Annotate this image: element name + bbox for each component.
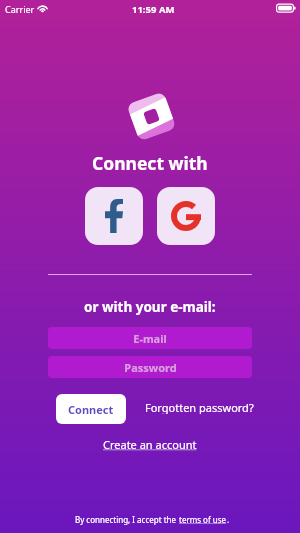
staticText: terms of use [179, 514, 227, 525]
staticText: E-mail [133, 331, 167, 346]
staticText: or with your e-mail: [84, 298, 216, 316]
staticText: . [227, 514, 230, 525]
staticText: By connecting, I accept the [75, 514, 179, 525]
button[interactable]: Sign in with Google [157, 187, 215, 245]
staticText: 11:59 AM [132, 3, 175, 16]
button[interactable]: Create an account [103, 437, 197, 452]
staticText: Connect with [92, 151, 208, 175]
button[interactable]: Password [48, 356, 252, 378]
staticText: Carrier [5, 3, 35, 15]
button[interactable]: Forgotten password? [145, 400, 254, 414]
button[interactable]: terms of use [179, 514, 227, 525]
button[interactable]: E-mail [48, 327, 252, 349]
button[interactable]: Sign in with Facebook [85, 187, 143, 245]
staticText: Password [124, 360, 177, 375]
button[interactable]: Connect [56, 394, 126, 424]
staticText: Create an account [103, 437, 197, 452]
staticText: Connect [68, 402, 114, 417]
staticText: Forgotten password? [145, 400, 254, 414]
